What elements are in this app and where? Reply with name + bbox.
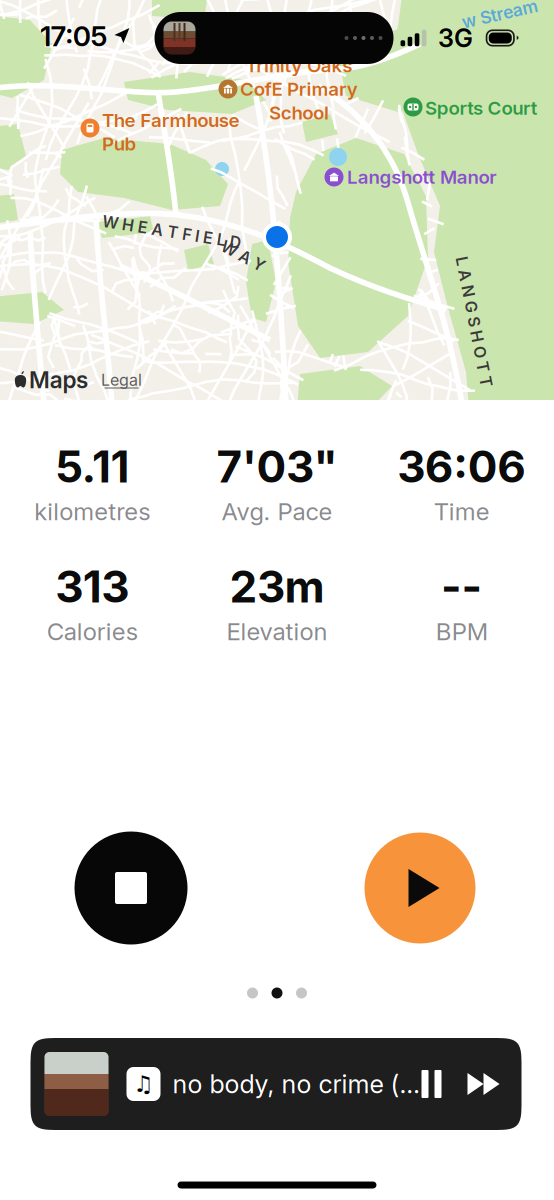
staticText: 23m [229,560,324,613]
staticText: kilometres [34,497,150,526]
staticText: 3G [438,23,473,53]
staticText: W H E A T F I E L D [101,222,242,242]
staticText: 17:05 [40,19,107,53]
staticText: -- [441,560,482,613]
staticText: L A N G S H O T T [407,312,540,332]
staticText: Pub [102,132,137,155]
staticText: School [269,101,329,124]
staticText: w Stream [461,3,539,24]
staticText: Elevation [226,617,327,646]
staticText: BPM [436,617,488,646]
button[interactable]: Pause [421,1070,441,1098]
staticText: Calories [47,617,138,646]
staticText: Sports Court [425,97,538,119]
staticText: no body, no crime (feat [172,1069,421,1099]
staticText: Maps [29,366,88,394]
staticText: CofE Primary [240,78,358,100]
staticText: 5.11 [55,440,130,493]
staticText: Avg. Pace [221,497,332,526]
staticText: Langshott Manor [347,166,496,188]
staticText: The Farmhouse [102,109,240,131]
staticText: Time [434,497,490,526]
button[interactable]: Resume workout [364,832,475,943]
staticText: 313 [55,560,129,613]
button[interactable]: Stop workout [74,831,187,944]
staticText: 36:06 [397,440,526,493]
staticText: 7'03" [216,440,337,493]
staticText: Legal [101,370,142,390]
staticText: ♫ [133,1071,153,1097]
staticText: Trinity Oaks [245,54,352,77]
button[interactable]: Next track [467,1073,499,1095]
staticText: W A Y [219,246,266,266]
